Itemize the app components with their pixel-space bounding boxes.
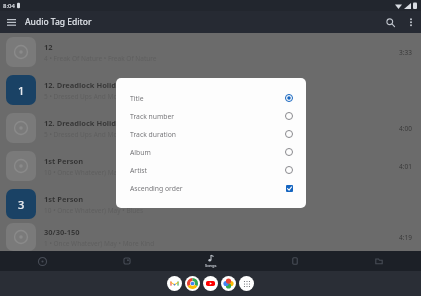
button[interactable]: 1 <box>0 71 421 109</box>
staticText: 12 <box>44 42 53 52</box>
staticText: 4:00 <box>399 124 412 133</box>
staticText: 4:01 <box>399 162 412 171</box>
staticText: 12. Dreadlock Holiday <box>44 118 125 128</box>
staticText: Title <box>130 94 285 103</box>
staticText: 1st Person <box>44 156 84 166</box>
button[interactable]: Artist <box>116 161 306 179</box>
button[interactable]: Track number <box>116 107 306 125</box>
button[interactable]: Open navigation menu <box>0 11 22 33</box>
staticText: Album <box>130 148 285 157</box>
button[interactable]: Songs <box>169 251 253 271</box>
button[interactable]: 3 <box>0 185 421 223</box>
button[interactable]: Gmail <box>167 276 182 291</box>
button[interactable]: Photos <box>221 276 236 291</box>
staticText: 30/30-150 <box>44 227 80 237</box>
button[interactable]: Ascending order <box>116 179 306 197</box>
button[interactable]: Album <box>116 143 306 161</box>
button[interactable]: 12. Dreadlock Holiday <box>0 109 421 147</box>
staticText: 12. Dreadlock Holiday <box>44 80 125 90</box>
staticText: Artist <box>130 166 285 175</box>
button[interactable]: Search <box>379 11 401 33</box>
button[interactable]: Track duration <box>116 125 306 143</box>
staticText: Track duration <box>130 130 285 139</box>
button[interactable]: YouTube <box>203 276 218 291</box>
staticText: 8:04 <box>3 2 15 10</box>
staticText: Ascending order <box>130 184 286 193</box>
staticText: 3:33 <box>399 48 412 57</box>
staticText: 1 • Once Whatever) May • More Kind <box>44 239 155 248</box>
button[interactable] <box>85 251 169 271</box>
button[interactable]: All apps <box>239 276 254 291</box>
staticText: Audio Tag Editor <box>25 16 92 28</box>
button[interactable] <box>0 251 85 271</box>
button[interactable]: 30/30-150 <box>0 223 421 251</box>
button[interactable]: Chrome <box>185 276 200 291</box>
button[interactable]: 12 <box>0 33 421 71</box>
staticText: 10 • Once Whatever) May • Blues <box>44 206 144 215</box>
button[interactable] <box>253 251 337 271</box>
staticText: 10 • Once Whatever) May • Blues <box>44 168 144 177</box>
staticText: 1 <box>18 83 25 98</box>
staticText: 4 • Freak Of Nature • Freak Of Nature <box>44 54 157 63</box>
staticText: Songs <box>205 263 217 268</box>
button[interactable]: 1st Person <box>0 147 421 185</box>
staticText: 3 <box>18 197 25 212</box>
button[interactable]: Title <box>116 89 306 107</box>
staticText: 5 • Dressed Ups And More 1 (10cc) <box>44 130 149 139</box>
button[interactable]: More options <box>401 12 421 32</box>
staticText: Track number <box>130 112 285 121</box>
staticText: 5 • Dressed Ups And More 1 (10cc) <box>44 92 149 101</box>
staticText: 1st Person <box>44 194 84 204</box>
staticText: 4:19 <box>399 233 412 242</box>
button[interactable] <box>337 251 421 271</box>
